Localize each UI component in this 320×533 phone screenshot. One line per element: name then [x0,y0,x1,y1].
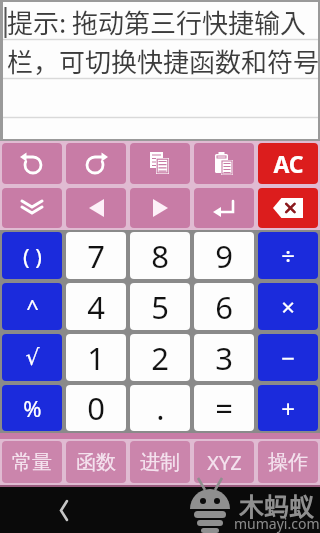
button[interactable]: 9 [194,232,254,279]
staticText: 7 [87,235,105,277]
staticText: 栏，可切换快捷函数和符号 [7,42,320,80]
button[interactable] [2,143,62,184]
button[interactable]: 0 [66,385,126,431]
button[interactable] [2,188,62,228]
button[interactable]: ( ) [2,232,62,279]
button[interactable]: − [258,334,318,381]
staticText: 1 [87,337,105,379]
staticText: . [156,387,165,429]
staticText: ÷ [281,239,295,272]
button[interactable]: 操作 [258,441,318,483]
staticText: % [23,393,42,423]
staticText: 5 [151,286,169,328]
button[interactable] [194,188,254,228]
button[interactable]: ÷ [258,232,318,279]
button[interactable] [66,143,126,184]
staticText: 8 [151,235,169,277]
button[interactable] [66,188,126,228]
button[interactable] [130,188,190,228]
button[interactable]: √ [2,334,62,381]
staticText: 进制 [140,450,180,475]
staticText: 2 [151,337,169,379]
staticText: 提示: 拖动第三行快捷输入 [7,3,307,41]
staticText: = [215,387,233,429]
button[interactable]: 进制 [130,441,190,483]
button[interactable]: 常量 [2,441,62,483]
button[interactable]: . [130,385,190,431]
button[interactable]: 1 [66,334,126,381]
button[interactable]: 3 [194,334,254,381]
button[interactable]: = [194,385,254,431]
staticText: XYZ [207,449,242,476]
button[interactable] [44,487,84,533]
button[interactable] [194,143,254,184]
staticText: 4 [87,286,105,328]
staticText: mumayi.com [234,514,320,533]
staticText: 函数 [76,450,116,475]
button[interactable]: % [2,385,62,431]
staticText: ^ [26,292,39,322]
staticText: √ [25,345,40,371]
staticText: AC [273,148,304,179]
button[interactable]: 函数 [66,441,126,483]
button[interactable]: XYZ [194,441,254,483]
staticText: 6 [215,286,233,328]
button[interactable] [258,188,318,228]
button[interactable]: 5 [130,283,190,330]
button[interactable]: 4 [66,283,126,330]
staticText: 9 [215,235,233,277]
staticText: 操作 [268,450,308,475]
button[interactable]: AC [258,143,318,184]
staticText: 3 [215,337,233,379]
button[interactable]: 7 [66,232,126,279]
staticText: 木蚂蚁 [239,487,315,523]
staticText: 常量 [12,450,52,475]
button[interactable]: 2 [130,334,190,381]
staticText: × [281,290,295,323]
button[interactable]: 8 [130,232,190,279]
staticText: ( ) [23,241,42,271]
button[interactable]: 6 [194,283,254,330]
button[interactable]: ^ [2,283,62,330]
staticText: − [281,341,295,374]
button[interactable]: × [258,283,318,330]
staticText: + [281,392,295,425]
staticText: 0 [87,387,105,429]
button[interactable]: + [258,385,318,431]
button[interactable] [130,143,190,184]
